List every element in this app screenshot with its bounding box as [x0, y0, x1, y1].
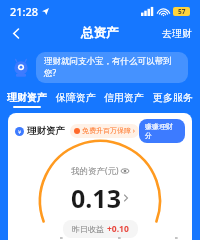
staticText: 理财就问支小宝，有什么可以帮到您? — [44, 56, 180, 79]
button[interactable]: Assistant — [12, 59, 30, 77]
button[interactable]: 更多服务 — [151, 91, 195, 108]
staticText: 去理财 — [162, 27, 192, 40]
button[interactable]: 0.13 — [71, 181, 129, 215]
button[interactable]: 理财就问支小宝，有什么可以帮到您? — [36, 52, 188, 83]
staticText: 21:28 — [10, 4, 39, 19]
staticText: 理财资产 — [27, 125, 65, 137]
staticText: 昨日收益 — [72, 224, 104, 234]
button[interactable]: Toggle visibility — [121, 167, 129, 175]
button[interactable]: 信用资产 — [102, 91, 146, 108]
staticText: 免费升百万保障 › — [82, 126, 135, 136]
staticText: 理财资产 — [7, 91, 47, 104]
button[interactable]: 免费升百万保障 › — [70, 124, 139, 138]
staticText: 总资产 — [81, 25, 119, 41]
staticText: 更多服务 — [153, 91, 193, 104]
button[interactable]: 理财资产 — [5, 91, 49, 108]
staticText: 我的资产(元) — [71, 165, 119, 177]
button[interactable]: 赚赚理财分 — [139, 119, 185, 143]
button[interactable]: 保障资产 — [54, 91, 98, 108]
button[interactable]: 昨日收益 — [63, 220, 138, 238]
staticText: 0.13 — [71, 181, 121, 215]
button[interactable]: 去理财 — [162, 27, 192, 40]
staticText: 赚赚理财分 — [145, 122, 179, 140]
staticText: 57 — [178, 7, 186, 16]
staticText: 保障资产 — [56, 91, 96, 104]
button[interactable]: Back — [6, 23, 26, 43]
staticText: 信用资产 — [104, 91, 144, 104]
staticText: ￥ — [17, 129, 22, 135]
staticText: +0.10 — [107, 223, 129, 235]
